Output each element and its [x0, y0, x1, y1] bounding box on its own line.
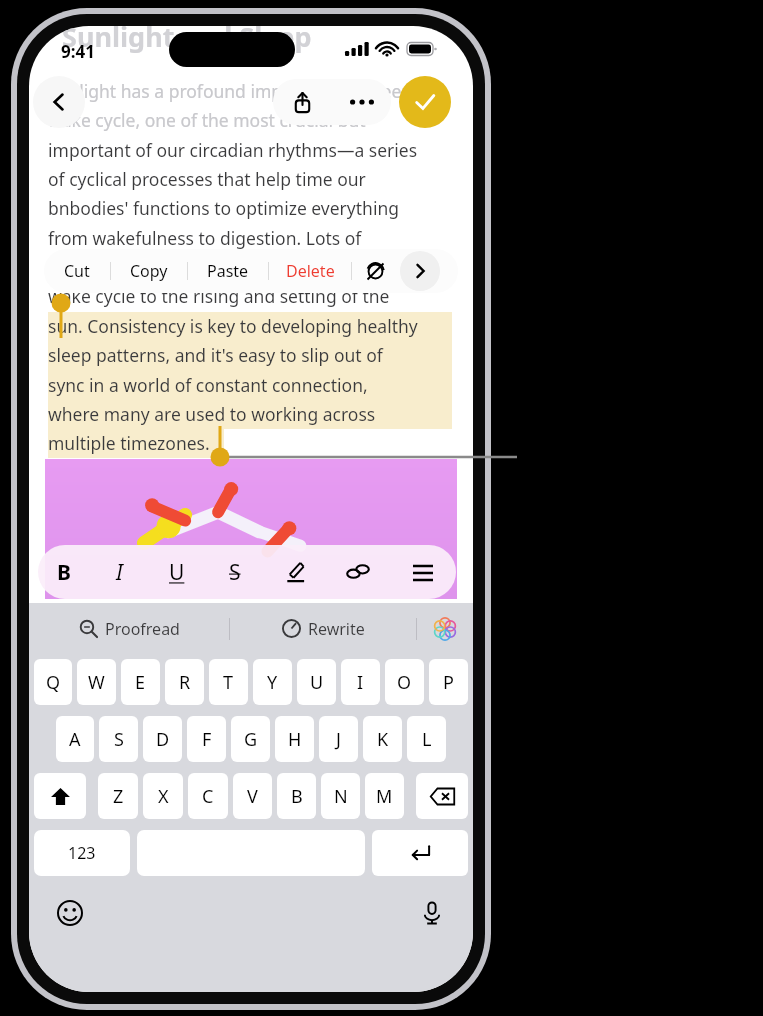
button[interactable]: W: [77, 659, 116, 705]
staticText: R: [179, 670, 191, 695]
staticText: important of our circadian rhythms—a ser…: [48, 138, 418, 162]
staticText: C: [202, 784, 214, 809]
button[interactable]: Rewrite: [230, 603, 416, 654]
staticText: Z: [113, 784, 124, 809]
button[interactable]: Share: [273, 79, 332, 125]
button[interactable]: B: [38, 545, 90, 599]
button[interactable]: Emoji: [49, 892, 91, 934]
staticText: where many are used to working across: [48, 402, 376, 426]
staticText: V: [247, 784, 258, 809]
staticText: U: [169, 558, 185, 587]
button[interactable]: Writing tools: [352, 249, 398, 293]
staticText: Sunlight and Sleep: [62, 26, 312, 55]
staticText: Rewrite: [308, 618, 365, 640]
staticText: sleep patterns, and it's easy to slip ou…: [48, 343, 383, 367]
button[interactable]: G: [231, 716, 270, 762]
button[interactable]: C: [188, 773, 228, 819]
staticText: multiple timezones.: [48, 431, 210, 455]
button[interactable]: Done: [399, 76, 451, 128]
staticText: D: [156, 727, 170, 752]
staticText: U: [310, 670, 324, 695]
button[interactable]: R: [165, 659, 204, 705]
staticText: H: [288, 727, 302, 752]
button[interactable]: U: [297, 659, 336, 705]
button[interactable]: X: [143, 773, 183, 819]
staticText: B: [291, 784, 303, 809]
button[interactable]: Alignment: [390, 545, 456, 599]
button[interactable]: S: [206, 545, 264, 599]
button[interactable]: I: [90, 545, 148, 599]
staticText: Paste: [207, 260, 249, 282]
button[interactable]: Link: [326, 545, 390, 599]
button[interactable]: More: [400, 251, 440, 291]
staticText: P: [443, 670, 454, 695]
staticText: exposure to sunlight helps link our slee…: [48, 255, 387, 279]
staticText: I: [357, 670, 364, 695]
staticText: Copy: [130, 260, 168, 282]
button[interactable]: Highlight: [264, 545, 326, 599]
button[interactable]: Delete: [269, 249, 351, 293]
button[interactable]: Q: [34, 659, 72, 705]
button[interactable]: Dictate: [411, 892, 453, 934]
staticText: sun. Consistency is key to developing he…: [48, 314, 418, 338]
button[interactable]: B: [277, 773, 316, 819]
staticText: K: [377, 727, 389, 752]
staticText: wake cycle, one of the most crucial but: [48, 108, 366, 132]
button[interactable]: K: [363, 716, 402, 762]
staticText: Sunlight has a profound impact on the sl…: [48, 79, 418, 103]
staticText: W: [88, 670, 105, 695]
staticText: from wakefulness to digestion. Lots of: [48, 226, 362, 250]
staticText: Delete: [286, 260, 335, 282]
button[interactable]: Cut: [44, 249, 110, 293]
staticText: Q: [46, 670, 61, 695]
button[interactable]: I: [341, 659, 380, 705]
staticText: Cut: [64, 260, 90, 282]
button[interactable]: V: [233, 773, 272, 819]
button[interactable]: J: [319, 716, 358, 762]
button[interactable]: P: [429, 659, 468, 705]
staticText: Y: [267, 670, 278, 695]
button[interactable]: Copy: [111, 249, 187, 293]
button[interactable]: U: [148, 545, 206, 599]
staticText: S: [229, 558, 241, 587]
staticText: A: [69, 727, 81, 752]
button[interactable]: 123: [34, 830, 130, 876]
staticText: O: [397, 670, 412, 695]
button[interactable]: L: [407, 716, 446, 762]
staticText: bnbodies' functions to optimize everythi…: [48, 196, 399, 220]
button[interactable]: More options: [332, 79, 391, 125]
staticText: B: [57, 558, 71, 587]
button[interactable]: M: [365, 773, 404, 819]
button[interactable]: A: [56, 716, 94, 762]
staticText: X: [158, 784, 169, 809]
staticText: J: [336, 727, 341, 752]
staticText: 9:41: [61, 40, 95, 63]
button[interactable]: S: [99, 716, 138, 762]
staticText: T: [223, 670, 234, 695]
button[interactable]: Y: [253, 659, 292, 705]
button[interactable]: Z: [98, 773, 138, 819]
staticText: sync in a world of constant connection,: [48, 373, 368, 397]
staticText: I: [116, 558, 123, 587]
button[interactable]: Back: [33, 76, 85, 128]
button[interactable]: Proofread: [29, 603, 229, 654]
staticText: M: [376, 784, 393, 809]
staticText: N: [334, 784, 348, 809]
button[interactable]: O: [385, 659, 424, 705]
button[interactable]: D: [143, 716, 182, 762]
staticText: Proofread: [105, 618, 180, 640]
button[interactable]: H: [275, 716, 314, 762]
button[interactable]: F: [187, 716, 226, 762]
button[interactable]: Paste: [188, 249, 268, 293]
button[interactable]: T: [209, 659, 248, 705]
button[interactable]: Backspace: [416, 773, 468, 819]
button[interactable]: Apple Intelligence: [417, 603, 473, 654]
button[interactable]: Return: [372, 830, 468, 876]
button[interactable]: N: [321, 773, 360, 819]
button[interactable]: E: [121, 659, 160, 705]
staticText: F: [202, 727, 212, 752]
staticText: S: [114, 727, 124, 752]
staticText: wake cycle to the rising and setting of …: [48, 284, 390, 308]
button[interactable]: Shift: [34, 773, 86, 819]
